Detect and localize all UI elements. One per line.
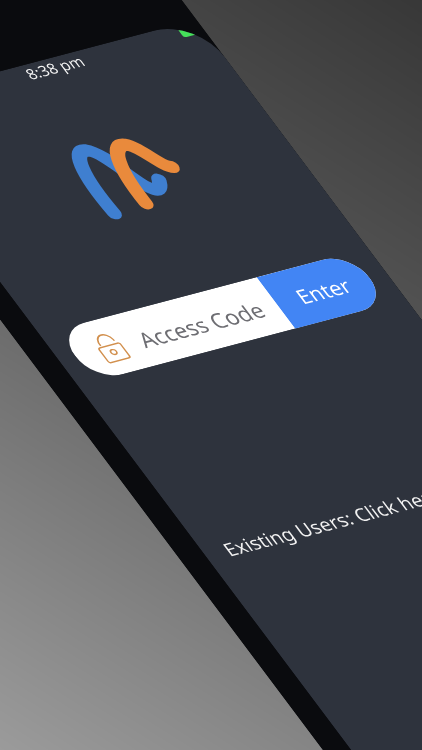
staticText: 8:38 pm bbox=[20, 51, 90, 84]
button[interactable]: Existing Users: Click here to Login bbox=[197, 458, 422, 567]
staticText: Access Code bbox=[130, 295, 272, 353]
other: Battery full bbox=[177, 24, 199, 38]
button[interactable]: Access Code bbox=[56, 252, 389, 382]
staticText: Enter bbox=[288, 271, 358, 310]
staticText: Existing Users: Click here to Login bbox=[217, 463, 422, 562]
button[interactable]: Enter bbox=[256, 252, 389, 329]
